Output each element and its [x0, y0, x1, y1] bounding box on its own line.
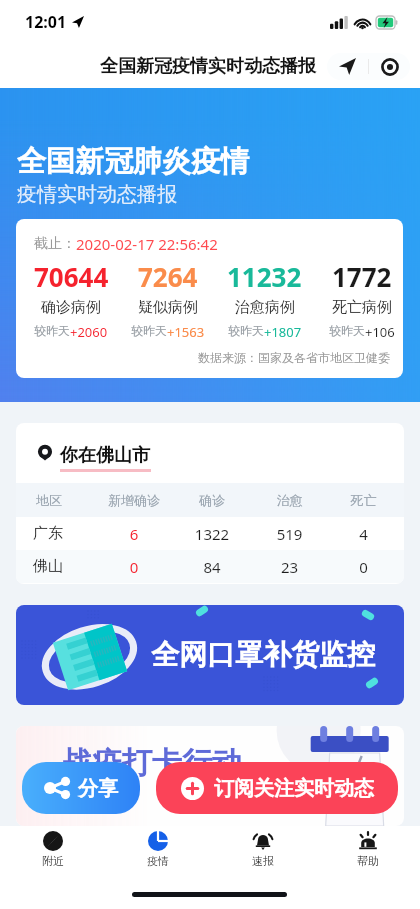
staticText: 速报: [252, 854, 274, 868]
staticText: 较昨天: [329, 323, 365, 338]
staticText: +1807: [264, 323, 302, 341]
staticText: 地区: [36, 492, 100, 508]
button[interactable]: 分享: [22, 762, 140, 814]
button[interactable]: 订阅关注实时动态: [156, 762, 398, 814]
staticText: 全国新冠肺炎疫情: [17, 143, 249, 180]
staticText: 11232: [227, 259, 302, 294]
staticText: 84: [168, 557, 256, 577]
staticText: 较昨天: [34, 323, 70, 338]
staticText: 12:01: [25, 11, 67, 33]
button[interactable]: 附近: [0, 826, 105, 868]
staticText: +2060: [70, 323, 108, 341]
staticText: 7264: [138, 259, 198, 294]
staticText: 1772: [332, 259, 392, 294]
button[interactable]: 广东: [16, 517, 404, 550]
staticText: 0: [100, 557, 168, 577]
staticText: 订阅关注实时动态: [214, 776, 374, 801]
button[interactable]: Share: [327, 58, 368, 75]
staticText: 新增确诊: [100, 492, 168, 508]
button[interactable]: 帮助: [315, 826, 420, 868]
button[interactable]: 疫情: [105, 826, 210, 868]
staticText: 全国新冠疫情实时动态播报: [100, 55, 316, 78]
staticText: 4: [323, 524, 404, 544]
staticText: 较昨天: [228, 323, 264, 338]
staticText: 23: [256, 557, 323, 577]
staticText: 疑似病例: [138, 298, 198, 317]
staticText: 战疫打卡行动: [62, 744, 242, 782]
staticText: 70644: [34, 259, 109, 294]
staticText: 帮助: [357, 854, 379, 868]
staticText: 治愈: [256, 492, 323, 508]
button[interactable]: 战疫打卡行动: [16, 726, 404, 826]
button[interactable]: Menu: [369, 58, 410, 76]
staticText: 1322: [168, 524, 256, 544]
button[interactable]: 佛山: [16, 550, 404, 583]
staticText: +106: [365, 323, 395, 341]
staticText: 519: [256, 524, 323, 544]
staticText: 数据来源：国家及各省市地区卫健委: [16, 350, 390, 365]
staticText: 分享: [78, 776, 118, 801]
staticText: 疫情: [147, 854, 169, 868]
staticText: 疫情实时动态播报: [17, 182, 177, 207]
staticText: 确诊病例: [41, 298, 101, 317]
staticText: 治愈病例: [235, 298, 295, 317]
staticText: 佛山: [33, 557, 100, 576]
staticText: 全网口罩补货监控: [151, 637, 375, 672]
staticText: 确诊: [168, 492, 256, 508]
staticText: +1563: [167, 323, 205, 341]
staticText: 较昨天: [131, 323, 167, 338]
staticText: 2020-02-17 22:56:42: [76, 234, 218, 254]
staticText: 死亡病例: [332, 298, 392, 317]
staticText: 附近: [42, 854, 64, 868]
staticText: 死亡: [323, 492, 404, 508]
staticText: 0: [323, 557, 404, 577]
staticText: 截止：: [34, 235, 76, 253]
staticText: 6: [100, 524, 168, 544]
button[interactable]: 速报: [210, 826, 315, 868]
staticText: 广东: [33, 524, 100, 543]
staticText: 你在佛山市: [60, 444, 150, 467]
button[interactable]: 全网口罩补货监控: [16, 605, 404, 705]
